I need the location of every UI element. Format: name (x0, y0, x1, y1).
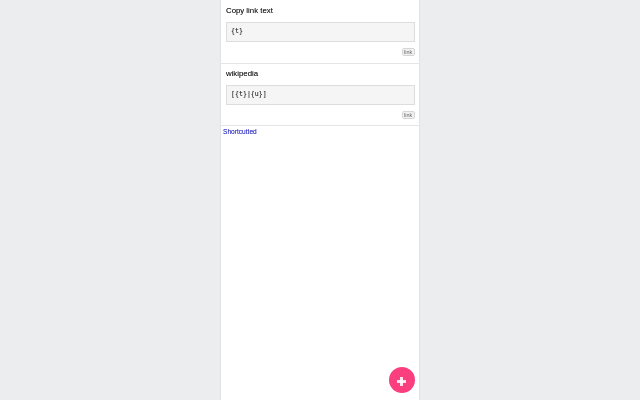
staticText: Copy link text (226, 6, 273, 15)
staticText: Shortcutted (223, 128, 257, 135)
button[interactable]: Add (389, 367, 415, 393)
button[interactable]: {t} (226, 22, 415, 42)
button[interactable]: link (402, 111, 415, 119)
staticText: wikipedia (226, 69, 259, 78)
staticText: {t} (231, 27, 243, 35)
button[interactable]: [{t}|{u}] (226, 85, 415, 105)
staticText: Shortcutted (223, 128, 257, 135)
staticText: [{t}|{u}] (231, 90, 267, 98)
button[interactable]: Shortcutted (220, 126, 420, 138)
staticText: link (404, 49, 413, 55)
button[interactable]: link (402, 48, 415, 56)
staticText: {t} (231, 27, 243, 35)
staticText: [{t}|{u}] (231, 90, 267, 98)
staticText: Copy link text (226, 6, 273, 15)
staticText: wikipedia (226, 69, 259, 78)
staticText: link (404, 112, 413, 118)
